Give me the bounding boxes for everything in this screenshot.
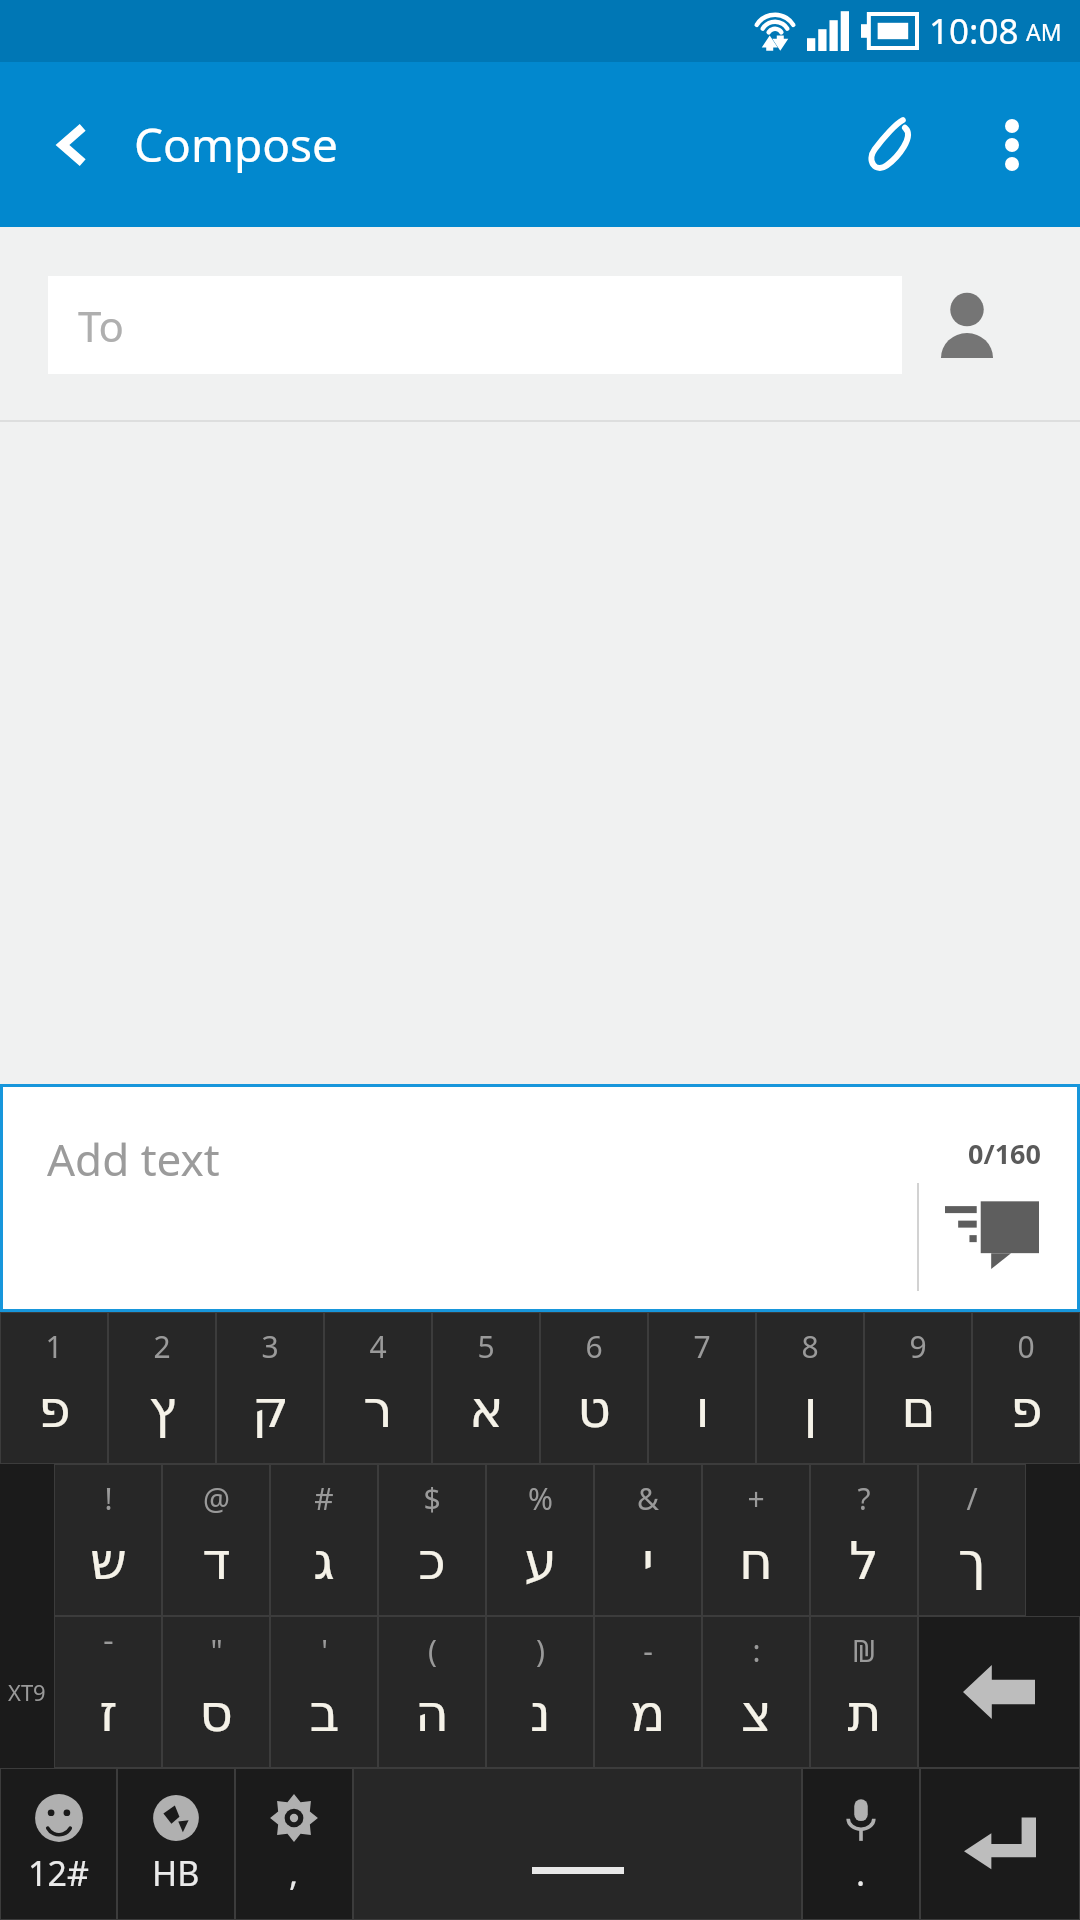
staticText: ם [901, 1379, 936, 1440]
button[interactable]: # [270, 1464, 378, 1616]
staticText: ? [857, 1478, 871, 1519]
staticText: ק [252, 1379, 289, 1440]
button[interactable]: $ [378, 1464, 486, 1616]
staticText: ר [363, 1379, 393, 1440]
staticText: ך [958, 1531, 986, 1592]
button[interactable]: / [918, 1464, 1026, 1616]
button[interactable]: Attach [846, 99, 938, 191]
staticText: 1 [45, 1326, 63, 1367]
staticText: & [637, 1478, 659, 1519]
button[interactable]: 0 [972, 1312, 1080, 1464]
staticText: Compose [134, 113, 339, 176]
button[interactable]: 1 [0, 1312, 108, 1464]
staticText: ת [847, 1683, 882, 1744]
staticText: ) [536, 1630, 545, 1671]
staticText: ל [849, 1531, 879, 1592]
staticText: 5 [477, 1326, 495, 1367]
button[interactable]: - [594, 1616, 702, 1768]
staticText: XT9 [8, 1677, 46, 1707]
staticText: פ [1010, 1379, 1043, 1440]
staticText: מ [630, 1683, 666, 1744]
staticText: פ [38, 1379, 71, 1440]
staticText: ( [428, 1630, 437, 1671]
staticText: # [314, 1478, 334, 1519]
button[interactable]: 3 [216, 1312, 324, 1464]
button[interactable]: More options [972, 105, 1052, 185]
staticText: 7 [693, 1326, 711, 1367]
staticText: 8 [801, 1326, 819, 1367]
staticText: ₪ [852, 1630, 876, 1671]
staticText: ן [803, 1379, 818, 1440]
button[interactable]: 9 [864, 1312, 972, 1464]
button[interactable]: XT9 [0, 1616, 54, 1768]
staticText: י [642, 1531, 654, 1592]
button[interactable]: 6 [540, 1312, 648, 1464]
button[interactable]: % [486, 1464, 594, 1616]
staticText: 12# [28, 1850, 89, 1896]
button[interactable]: 12# [0, 1768, 117, 1920]
button[interactable]: To [48, 276, 902, 374]
staticText: 3 [261, 1326, 279, 1367]
button[interactable]: Pick contact [902, 270, 1032, 380]
button[interactable]: HB [117, 1768, 235, 1920]
button[interactable]: Space [353, 1768, 802, 1920]
staticText: To [78, 297, 124, 354]
button[interactable]: Back [36, 108, 110, 182]
staticText: 9 [909, 1326, 927, 1367]
button[interactable]: 4 [324, 1312, 432, 1464]
staticText: @ [203, 1478, 230, 1519]
staticText: ה [415, 1683, 449, 1744]
staticText: / [966, 1478, 978, 1519]
staticText: ח [739, 1531, 773, 1592]
staticText: 0/160 [968, 1135, 1041, 1172]
staticText: 10:08 [929, 7, 1019, 55]
button[interactable]: 2 [108, 1312, 216, 1464]
button[interactable]: @ [162, 1464, 270, 1616]
button[interactable]: ( [378, 1616, 486, 1768]
staticText: 0 [1017, 1326, 1035, 1367]
staticText: ו [695, 1379, 710, 1440]
staticText: ־ [103, 1630, 114, 1665]
button[interactable]: Backspace [918, 1616, 1080, 1768]
staticText: ץ [148, 1379, 177, 1440]
staticText: ס [199, 1683, 233, 1744]
staticText: - [643, 1630, 653, 1671]
staticText: נ [530, 1683, 551, 1744]
staticText: , [289, 1850, 299, 1896]
button[interactable]: Enter [920, 1768, 1080, 1920]
staticText: ע [524, 1531, 557, 1592]
staticText: ג [313, 1531, 335, 1592]
button[interactable]: ־ [54, 1616, 162, 1768]
staticText: ט [577, 1379, 611, 1440]
button[interactable]: " [162, 1616, 270, 1768]
button[interactable]: ₪ [810, 1616, 918, 1768]
staticText: 2 [153, 1326, 171, 1367]
button[interactable]: ! [54, 1464, 162, 1616]
button[interactable]: . [802, 1768, 920, 1920]
button[interactable]: ' [270, 1616, 378, 1768]
button[interactable]: + [702, 1464, 810, 1616]
staticText: + [747, 1478, 765, 1519]
staticText: צ [741, 1683, 772, 1744]
staticText: " [210, 1630, 223, 1671]
staticText: 6 [585, 1326, 603, 1367]
staticText: HB [152, 1850, 200, 1896]
button[interactable]: ? [810, 1464, 918, 1616]
staticText: . [856, 1850, 866, 1896]
button[interactable]: & [594, 1464, 702, 1616]
staticText: AM [1026, 16, 1062, 47]
staticText: ד [202, 1531, 231, 1592]
button[interactable]: Add text [3, 1087, 1077, 1309]
staticText: 4 [369, 1326, 387, 1367]
staticText: : [752, 1630, 761, 1671]
staticText: $ [423, 1478, 441, 1519]
staticText: א [469, 1379, 504, 1440]
button[interactable]: ) [486, 1616, 594, 1768]
button[interactable]: , [235, 1768, 353, 1920]
staticText: ב [309, 1683, 340, 1744]
button[interactable]: 7 [648, 1312, 756, 1464]
button[interactable]: 8 [756, 1312, 864, 1464]
button[interactable]: : [702, 1616, 810, 1768]
button[interactable]: 5 [432, 1312, 540, 1464]
button[interactable]: Send message [933, 1187, 1051, 1279]
